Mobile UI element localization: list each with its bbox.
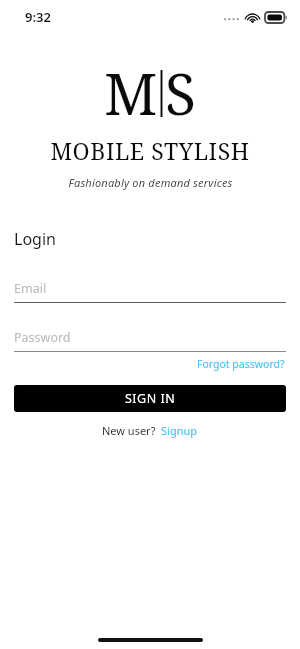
staticText: 9:32 bbox=[25, 8, 51, 26]
button[interactable]: Forgot password? bbox=[196, 356, 286, 372]
staticText: M bbox=[104, 54, 158, 132]
button[interactable]: Password bbox=[14, 327, 286, 352]
staticText: MOBILE STYLISH bbox=[50, 135, 250, 166]
staticText: Login bbox=[14, 228, 56, 250]
button[interactable]: SIGN IN bbox=[14, 385, 286, 412]
staticText: Email bbox=[14, 280, 47, 297]
staticText: Password bbox=[14, 329, 71, 346]
staticText: Fashionably on demand services bbox=[68, 175, 233, 190]
button[interactable]: Email bbox=[14, 278, 286, 303]
staticText: Forgot password? bbox=[197, 357, 285, 371]
staticText: SIGN IN bbox=[125, 390, 176, 407]
staticText: S bbox=[165, 54, 197, 132]
button[interactable]: Signup bbox=[160, 422, 199, 439]
staticText: Signup bbox=[161, 423, 198, 438]
staticText: New user? bbox=[102, 423, 156, 438]
